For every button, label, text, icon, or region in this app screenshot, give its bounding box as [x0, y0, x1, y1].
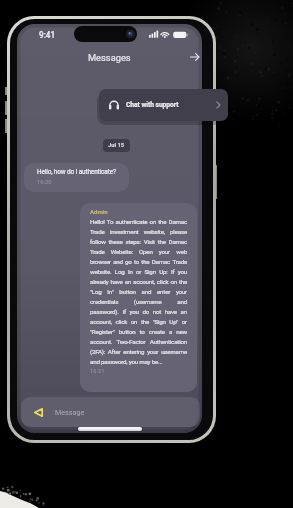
button[interactable] [187, 50, 202, 64]
staticText: Hello! To authenticate on the Damac Trad… [90, 218, 187, 366]
staticText: Messages [88, 52, 131, 63]
staticText: 9:41 [39, 30, 56, 40]
staticText: Message [55, 408, 85, 416]
staticText: Hello, how do I authenticate? [37, 168, 116, 176]
button[interactable]: Admin [80, 203, 197, 392]
staticText: Chat with support [126, 101, 179, 109]
button[interactable]: Chat with support [99, 89, 228, 121]
button[interactable]: Message [21, 397, 200, 427]
staticText: 16:20 [37, 179, 52, 186]
staticText: 16:21 [90, 368, 105, 375]
staticText: Jul 15 [108, 142, 125, 149]
button[interactable]: Hello, how do I authenticate? [24, 163, 129, 192]
staticText: Admin [90, 208, 108, 215]
